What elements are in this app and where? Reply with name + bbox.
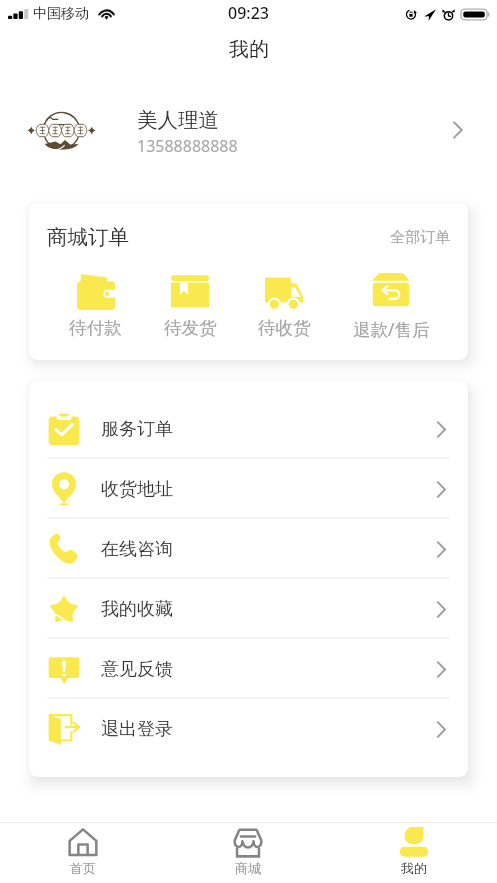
staticText: 退出登录 bbox=[101, 718, 173, 741]
button[interactable]: 商城 bbox=[165, 823, 331, 881]
staticText: 退款/售后 bbox=[353, 317, 430, 341]
button[interactable]: 意见反馈 bbox=[29, 639, 468, 699]
button[interactable]: 服务订单 bbox=[29, 399, 468, 459]
button[interactable]: 首页 bbox=[0, 823, 165, 881]
button[interactable]: 待收货 bbox=[237, 273, 331, 339]
staticText: 商城订单 bbox=[47, 224, 129, 250]
staticText: 商城 bbox=[235, 860, 261, 876]
button[interactable]: 全部订单 bbox=[390, 228, 450, 247]
button[interactable]: 在线咨询 bbox=[29, 519, 468, 579]
staticText: 收货地址 bbox=[101, 478, 173, 501]
staticText: 待付款 bbox=[69, 317, 122, 339]
button[interactable]: 收货地址 bbox=[29, 459, 468, 519]
staticText: 美人理道 bbox=[137, 107, 219, 133]
staticText: 待收货 bbox=[258, 317, 311, 339]
staticText: 我的 bbox=[229, 37, 269, 62]
button[interactable]: 退出登录 bbox=[29, 699, 468, 759]
staticText: 意见反馈 bbox=[101, 658, 173, 681]
staticText: 服务订单 bbox=[101, 418, 173, 441]
staticText: 全部订单 bbox=[390, 228, 450, 247]
button[interactable]: 待付款 bbox=[48, 273, 143, 339]
staticText: 首页 bbox=[70, 860, 96, 876]
staticText: 我的 bbox=[401, 860, 427, 876]
button[interactable]: Profile 美人理道 13588888888 bbox=[0, 85, 497, 175]
button[interactable]: 退款/售后 bbox=[331, 273, 451, 341]
button[interactable]: 我的 bbox=[331, 823, 497, 881]
staticText: 我的收藏 bbox=[101, 598, 173, 621]
button[interactable]: 待发货 bbox=[143, 273, 237, 339]
staticText: 中国移动 bbox=[33, 5, 89, 23]
button[interactable]: 我的收藏 bbox=[29, 579, 468, 639]
staticText: 09:23 bbox=[228, 2, 269, 24]
staticText: 在线咨询 bbox=[101, 538, 173, 561]
staticText: 13588888888 bbox=[137, 135, 238, 157]
staticText: 待发货 bbox=[164, 317, 217, 339]
